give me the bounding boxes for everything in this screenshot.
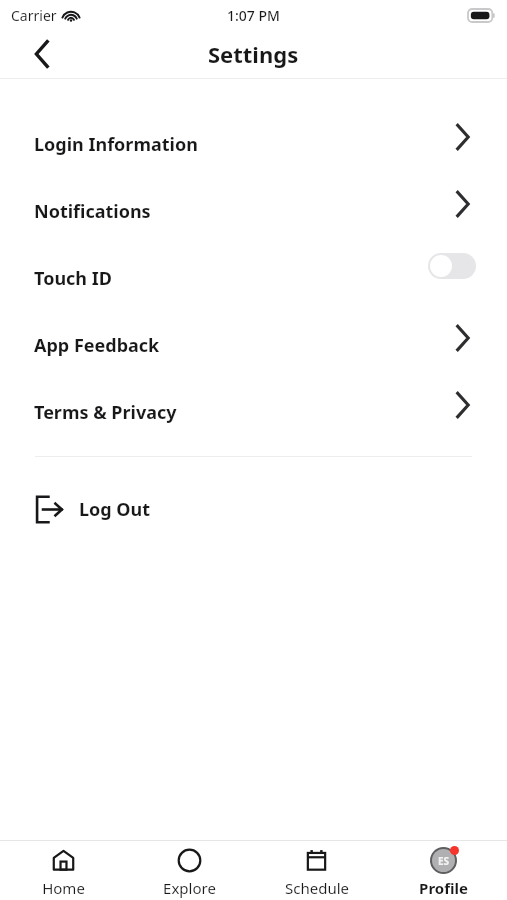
staticText: Schedule	[285, 878, 349, 898]
staticText: Profile	[419, 878, 468, 898]
button[interactable]: App Feedback	[0, 312, 507, 379]
staticText: Terms & Privacy	[34, 400, 177, 425]
button[interactable]: Explore	[126, 841, 253, 900]
staticText: Settings	[208, 39, 299, 69]
staticText: Home	[42, 878, 85, 898]
staticText: App Feedback	[34, 333, 160, 358]
staticText: Log Out	[79, 497, 151, 522]
staticText: Carrier	[11, 6, 57, 25]
button[interactable]: Login Information	[0, 111, 507, 178]
button[interactable]: Schedule	[253, 841, 380, 900]
button[interactable]: Back	[20, 32, 64, 76]
staticText: Notifications	[34, 199, 151, 224]
button[interactable]: Terms & Privacy	[0, 379, 507, 446]
button[interactable]: Log Out	[0, 485, 507, 533]
staticText: Touch ID	[34, 266, 112, 291]
staticText: 1:07 PM	[227, 6, 280, 25]
button[interactable]: Home	[0, 841, 126, 900]
staticText: Explore	[163, 878, 216, 898]
staticText: ES	[438, 854, 450, 868]
button[interactable]: Notifications	[0, 178, 507, 245]
button[interactable]: Touch ID toggle	[428, 253, 476, 279]
button[interactable]: Touch ID	[0, 245, 507, 312]
staticText: Login Information	[34, 132, 198, 157]
button[interactable]: ES	[380, 841, 507, 900]
